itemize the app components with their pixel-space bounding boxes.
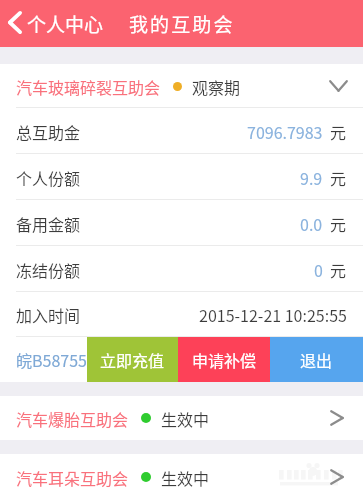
button[interactable]: 汽车耳朵互助会	[0, 454, 363, 500]
staticText: 9.9	[300, 166, 323, 189]
staticText: 退出	[300, 348, 333, 371]
staticText: 备用金额	[16, 212, 81, 235]
staticText: 0	[314, 258, 323, 281]
staticText: 观察期	[192, 75, 241, 98]
staticText: 0.0	[300, 212, 323, 235]
staticText: 生效中	[161, 466, 210, 489]
staticText: 元	[330, 120, 347, 143]
staticText: 元	[330, 166, 347, 189]
button[interactable]: 退出	[270, 337, 363, 382]
button[interactable]: 汽车玻璃碎裂互助会	[0, 64, 363, 108]
staticText: 生效中	[161, 407, 210, 430]
staticText: 我的互助会	[129, 10, 235, 38]
staticText: 元	[330, 258, 347, 281]
staticText: 元	[330, 212, 347, 235]
button[interactable]: 立即充值	[87, 337, 178, 382]
staticText: 汽车玻璃碎裂互助会	[16, 75, 161, 98]
staticText: 皖B58755	[16, 348, 87, 371]
staticText: 申请补偿	[192, 348, 257, 371]
button[interactable]: Back to 个人中心	[0, 5, 110, 43]
staticText: 立即充值	[100, 348, 165, 371]
staticText: 加入时间	[16, 303, 81, 326]
staticText: 汽车耳朵互助会	[16, 466, 129, 489]
staticText: 7096.7983	[247, 120, 323, 143]
button[interactable]: 汽车爆胎互助会	[0, 396, 363, 440]
staticText: 2015-12-21 10:25:55	[199, 303, 347, 326]
staticText: 总互助金	[16, 120, 81, 143]
staticText: 个人份额	[16, 166, 81, 189]
staticText: 汽车爆胎互助会	[16, 407, 129, 430]
staticText: 个人中心	[27, 10, 104, 38]
staticText: 冻结份额	[16, 258, 81, 281]
button[interactable]: 申请补偿	[178, 337, 270, 382]
